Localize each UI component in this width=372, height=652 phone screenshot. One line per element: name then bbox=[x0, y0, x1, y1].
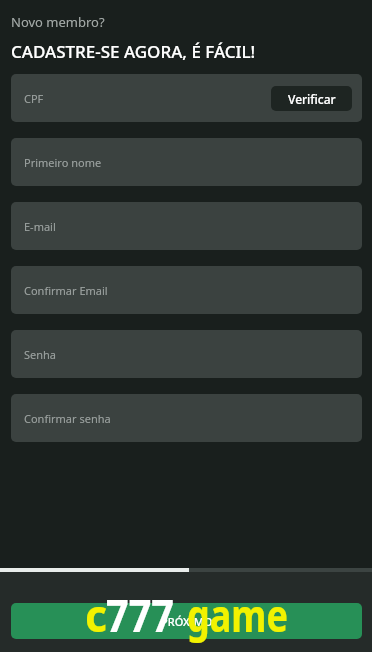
staticText: Confirmar senha bbox=[24, 411, 111, 426]
button[interactable]: Senha bbox=[11, 330, 362, 378]
button[interactable]: CPF bbox=[11, 74, 362, 122]
button[interactable]: Confirmar senha bbox=[11, 394, 362, 442]
button[interactable]: PRÓXIMO bbox=[11, 603, 362, 639]
staticText: Verificar bbox=[288, 91, 336, 107]
staticText: Novo membro? bbox=[11, 13, 105, 31]
button[interactable]: Verificar bbox=[271, 86, 352, 111]
staticText: CPF bbox=[24, 91, 44, 106]
staticText: Confirmar Email bbox=[24, 283, 108, 298]
staticText: game bbox=[187, 584, 289, 645]
staticText: Primeiro nome bbox=[24, 155, 102, 170]
staticText: PRÓXIMO bbox=[161, 614, 213, 629]
staticText: 777 bbox=[106, 584, 175, 645]
staticText: Senha bbox=[24, 347, 57, 362]
staticText: E-mail bbox=[24, 219, 56, 234]
staticText: CADASTRE-SE AGORA, É FÁCIL! bbox=[11, 40, 256, 63]
button[interactable]: E-mail bbox=[11, 202, 362, 250]
button[interactable]: Confirmar Email bbox=[11, 266, 362, 314]
staticText: c bbox=[85, 584, 108, 645]
button[interactable]: Primeiro nome bbox=[11, 138, 362, 186]
